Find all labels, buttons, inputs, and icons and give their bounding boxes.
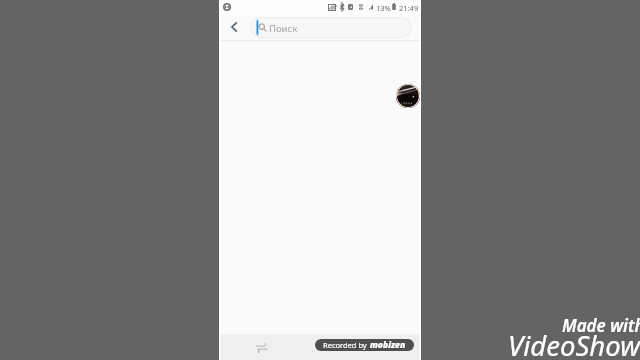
button[interactable]: Search [250,17,412,38]
button[interactable]: Recent apps [253,338,271,356]
staticText: 13% [376,3,391,13]
staticText: VideoShow [508,327,640,360]
button[interactable]: Back [225,17,242,37]
staticText: Recorded by [323,340,367,350]
staticText: mobizen [370,339,406,351]
button[interactable]: Profile chat head [396,84,420,108]
staticText: Поиск [269,22,298,35]
staticText: Made with [562,314,640,337]
staticText: 21:49 [399,3,419,13]
